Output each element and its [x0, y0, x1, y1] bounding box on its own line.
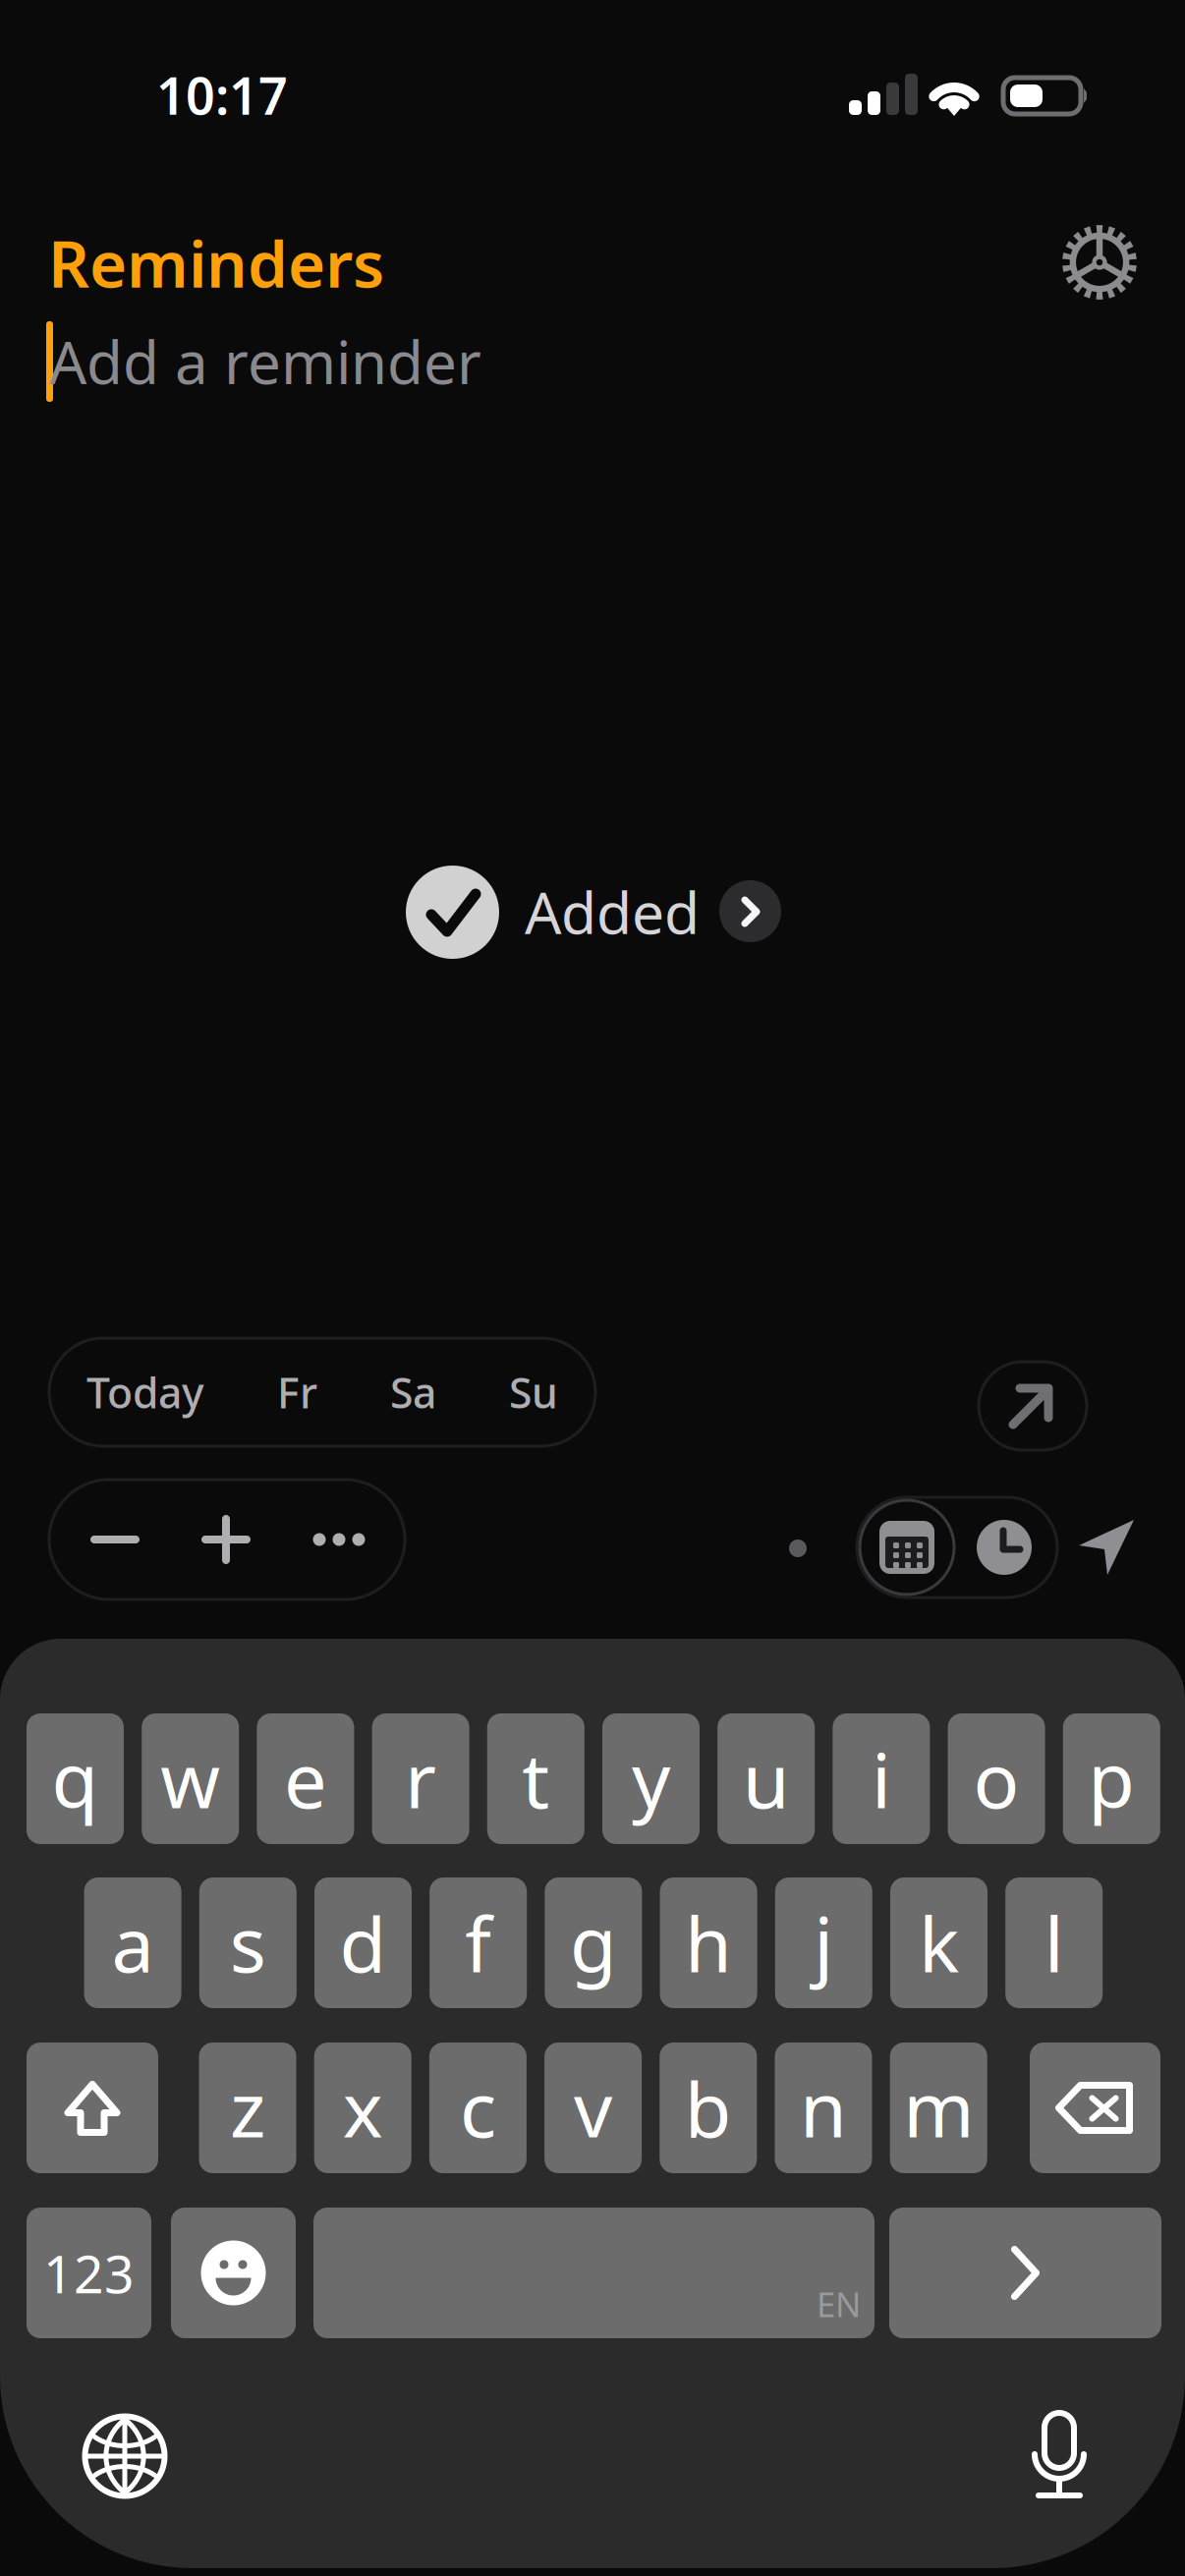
- staticText: Today: [86, 1364, 204, 1420]
- button[interactable]: EN: [313, 2208, 875, 2338]
- button[interactable]: Dictate: [990, 2387, 1128, 2525]
- button[interactable]: More: [285, 1480, 393, 1599]
- button[interactable]: Date: [860, 1500, 954, 1595]
- staticText: 123: [43, 2238, 135, 2308]
- staticText: r: [405, 1728, 436, 1829]
- button[interactable]: a: [84, 1877, 181, 2008]
- button[interactable]: j: [775, 1877, 872, 2008]
- button[interactable]: [889, 2208, 1161, 2338]
- staticText: EN: [817, 2281, 861, 2326]
- staticText: Sa: [390, 1364, 436, 1420]
- staticText: w: [160, 1728, 220, 1829]
- button[interactable]: z: [199, 2043, 296, 2173]
- button[interactable]: m: [890, 2043, 987, 2173]
- button[interactable]: c: [429, 2043, 527, 2173]
- button[interactable]: [1030, 2043, 1160, 2173]
- button[interactable]: k: [890, 1877, 987, 2008]
- staticText: l: [1044, 1892, 1064, 1993]
- staticText: 10:17: [156, 61, 288, 129]
- staticText: h: [685, 1892, 732, 1993]
- staticText: k: [919, 1892, 959, 1993]
- staticText: v: [574, 2057, 612, 2158]
- button[interactable]: r: [372, 1713, 469, 1844]
- staticText: d: [339, 1892, 387, 1993]
- staticText: p: [1088, 1728, 1135, 1829]
- button[interactable]: b: [660, 2043, 757, 2173]
- staticText: f: [465, 1892, 491, 1993]
- button[interactable]: w: [142, 1713, 239, 1844]
- button[interactable]: f: [430, 1877, 527, 2008]
- staticText: Reminders: [48, 220, 384, 305]
- button[interactable]: Time: [957, 1500, 1051, 1595]
- button[interactable]: l: [1005, 1877, 1103, 2008]
- button[interactable]: Next keyboard: [56, 2387, 194, 2525]
- staticText: g: [570, 1892, 617, 1993]
- staticText: Fr: [277, 1364, 317, 1420]
- button[interactable]: 123: [27, 2208, 151, 2338]
- button[interactable]: Location: [1075, 1513, 1142, 1584]
- button[interactable]: o: [948, 1713, 1045, 1844]
- button[interactable]: i: [833, 1713, 930, 1844]
- button[interactable]: e: [257, 1713, 354, 1844]
- staticText: n: [800, 2057, 847, 2158]
- button[interactable]: n: [775, 2043, 872, 2173]
- button[interactable]: Decrease priority: [61, 1480, 169, 1599]
- button[interactable]: t: [487, 1713, 584, 1844]
- staticText: o: [973, 1728, 1020, 1829]
- staticText: b: [685, 2057, 732, 2158]
- button[interactable]: [27, 2043, 158, 2173]
- staticText: i: [871, 1728, 891, 1829]
- staticText: e: [284, 1728, 327, 1829]
- button[interactable]: v: [544, 2043, 642, 2173]
- staticText: q: [52, 1728, 99, 1829]
- staticText: j: [814, 1892, 834, 1993]
- staticText: c: [460, 2057, 496, 2158]
- button[interactable]: [171, 2208, 296, 2338]
- staticText: a: [112, 1892, 154, 1993]
- button[interactable]: Settings: [1045, 208, 1154, 316]
- staticText: y: [632, 1728, 670, 1829]
- staticText: Added: [525, 873, 700, 950]
- staticText: m: [903, 2057, 974, 2158]
- button[interactable]: q: [27, 1713, 124, 1844]
- button[interactable]: y: [602, 1713, 700, 1844]
- button[interactable]: p: [1063, 1713, 1160, 1844]
- button[interactable]: Today: [49, 1338, 595, 1446]
- button[interactable]: d: [314, 1877, 412, 2008]
- button[interactable]: x: [314, 2043, 411, 2173]
- button[interactable]: s: [199, 1877, 297, 2008]
- staticText: Add a reminder: [49, 322, 481, 401]
- staticText: Su: [509, 1364, 558, 1420]
- button[interactable]: u: [717, 1713, 815, 1844]
- button[interactable]: Expand: [979, 1362, 1087, 1450]
- staticText: z: [230, 2057, 265, 2158]
- staticText: t: [522, 1728, 550, 1829]
- staticText: s: [230, 1892, 266, 1993]
- staticText: x: [343, 2057, 383, 2158]
- button[interactable]: Increase priority: [172, 1480, 280, 1599]
- staticText: u: [743, 1728, 790, 1829]
- button[interactable]: g: [545, 1877, 642, 2008]
- button[interactable]: h: [660, 1877, 757, 2008]
